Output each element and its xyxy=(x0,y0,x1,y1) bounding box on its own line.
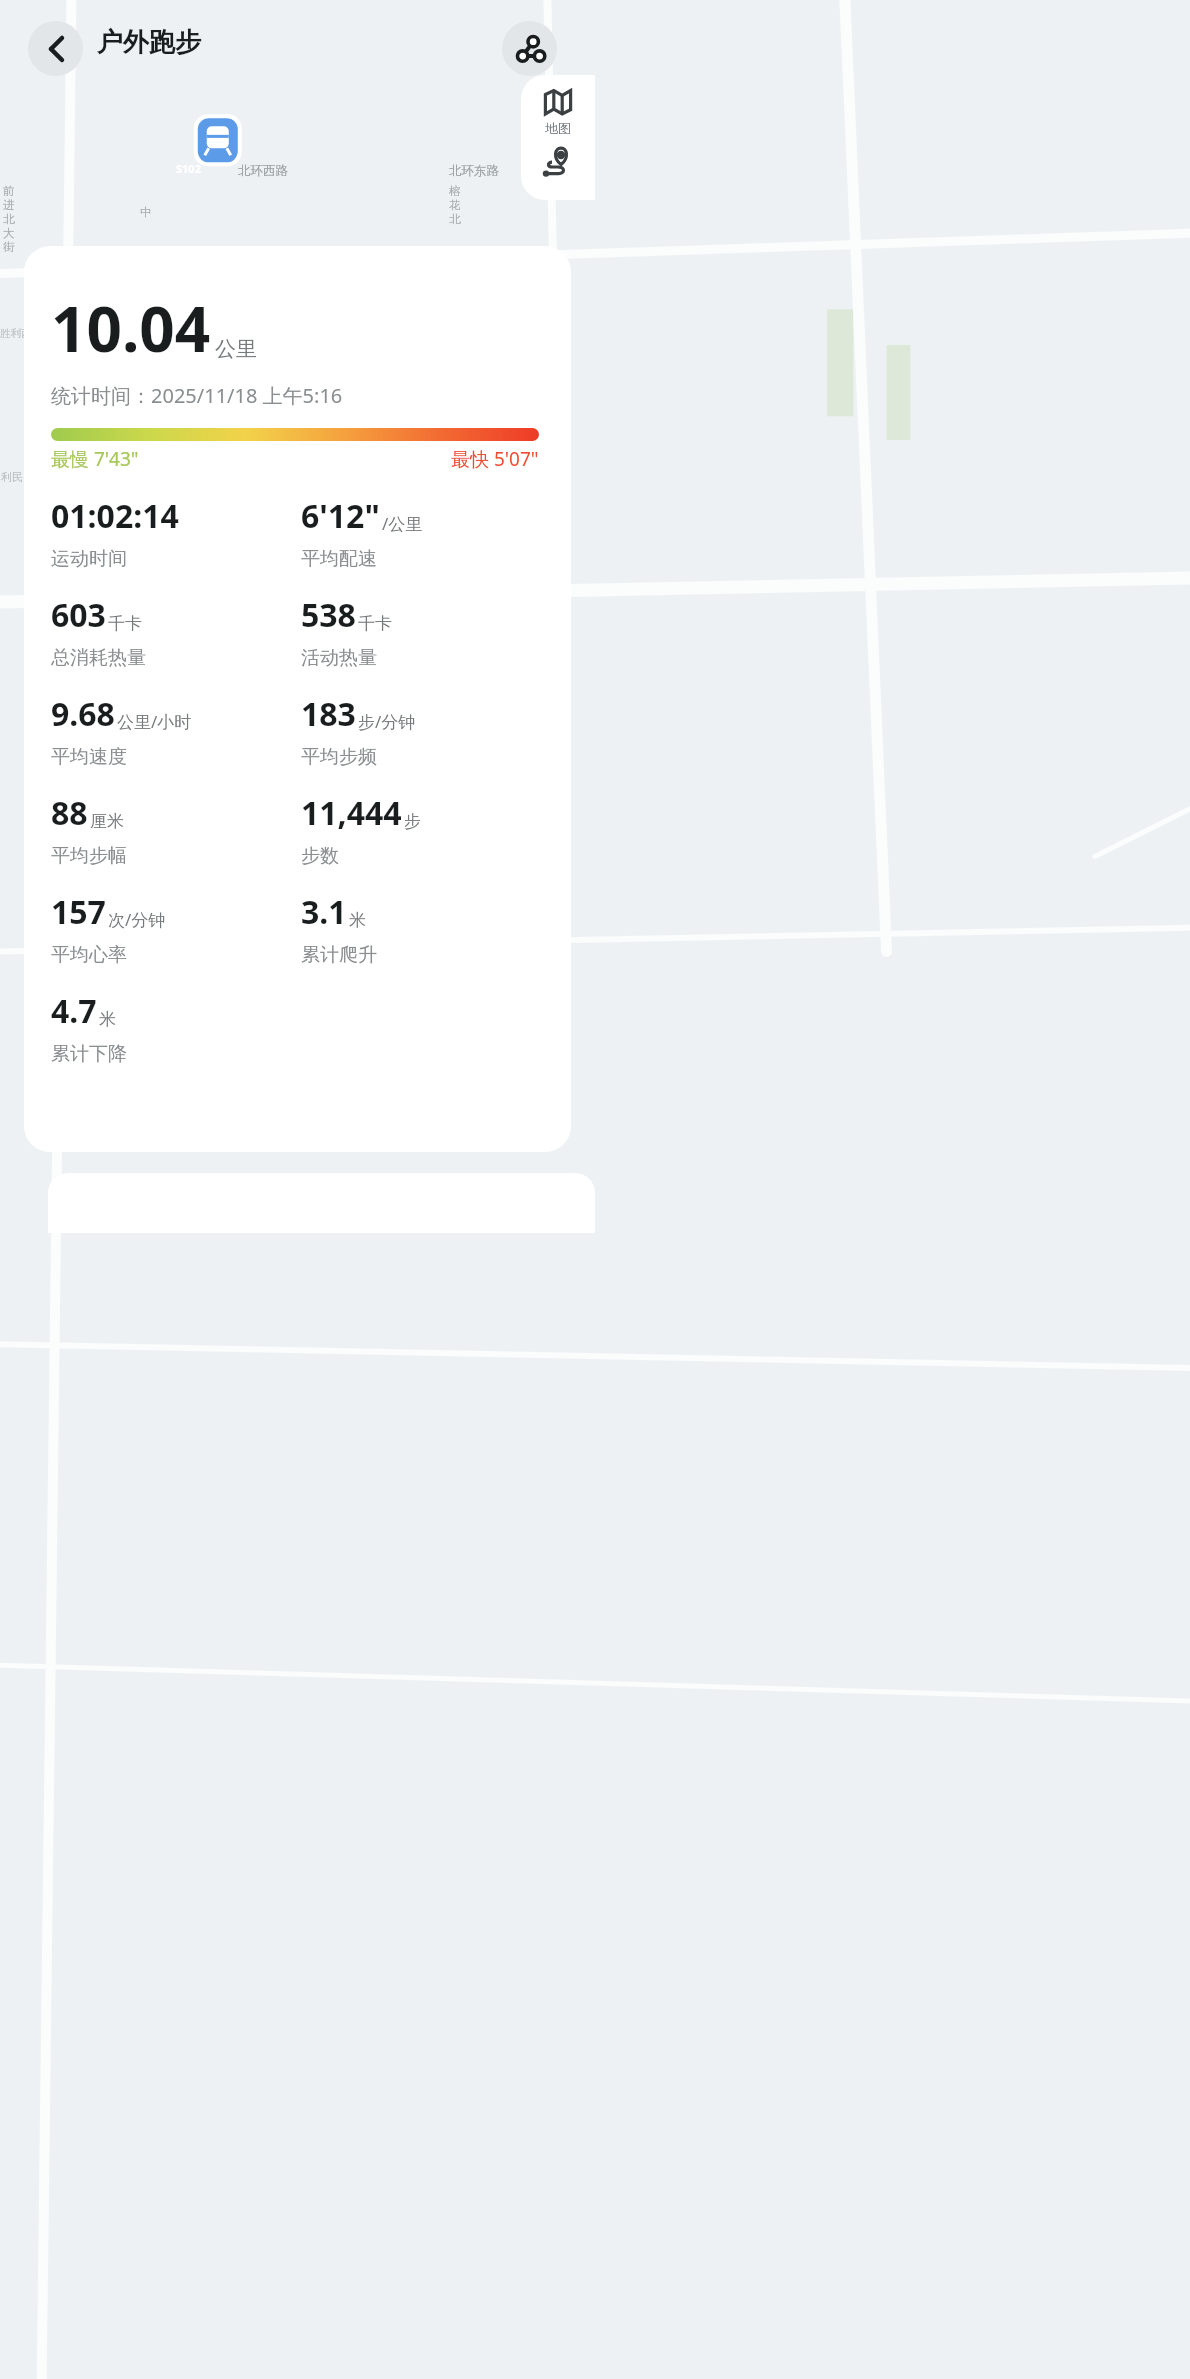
staticText: 平均步频 xyxy=(301,745,377,769)
button[interactable]: Map xyxy=(543,75,573,136)
button[interactable]: 6'12" xyxy=(301,494,551,571)
staticText: 9.68 xyxy=(51,692,115,736)
staticText: 平均速度 xyxy=(51,745,127,769)
staticText: 米 xyxy=(349,910,366,931)
staticText: 运动时间 xyxy=(51,547,127,571)
button[interactable]: 4.7 xyxy=(51,989,301,1066)
staticText: 最快 5'07" xyxy=(451,446,539,472)
staticText: 胜利西 xyxy=(0,327,32,340)
staticText: 累计下降 xyxy=(51,1042,127,1066)
staticText: 公里/小时 xyxy=(117,710,192,733)
button[interactable]: 538 xyxy=(301,593,551,670)
staticText: 01:02:14 xyxy=(51,494,179,538)
staticText: 平均配速 xyxy=(301,547,377,571)
staticText: 157 xyxy=(51,890,106,934)
button[interactable]: 88 xyxy=(51,791,301,868)
staticText: 地图 xyxy=(545,120,571,136)
button[interactable]: 11,444 xyxy=(301,791,551,868)
staticText: 最慢 7'43" xyxy=(51,446,139,472)
staticText: 米 xyxy=(99,1009,116,1030)
staticText: 4.7 xyxy=(51,989,97,1033)
staticText: 平均步幅 xyxy=(51,844,127,868)
button[interactable]: 603 xyxy=(51,593,301,670)
button[interactable]: 9.68 xyxy=(51,692,301,769)
staticText: 北 xyxy=(3,212,15,226)
staticText: 北 xyxy=(449,212,461,226)
staticText: 厘米 xyxy=(90,811,124,832)
staticText: 88 xyxy=(51,791,88,835)
staticText: 前 xyxy=(3,184,15,198)
staticText: 603 xyxy=(51,593,106,637)
staticText: 统计时间：2025/11/18 上午5:16 xyxy=(51,382,343,409)
staticText: 千卡 xyxy=(108,613,142,634)
staticText: 累计爬升 xyxy=(301,943,377,967)
staticText: 活动热量 xyxy=(301,646,377,670)
staticText: 步数 xyxy=(301,844,339,868)
staticText: 公里 xyxy=(215,336,257,362)
staticText: 街 xyxy=(3,240,15,254)
staticText: 花 xyxy=(449,198,461,212)
button[interactable]: Route xyxy=(543,146,573,176)
staticText: 榕 xyxy=(449,184,461,198)
staticText: 总消耗热量 xyxy=(51,646,146,670)
staticText: 进 xyxy=(3,198,15,212)
button[interactable]: 157 xyxy=(51,890,301,967)
button[interactable]: 01:02:14 xyxy=(51,494,301,571)
staticText: 中 xyxy=(140,205,152,219)
staticText: 平均心率 xyxy=(51,943,127,967)
button[interactable]: 3.1 xyxy=(301,890,551,967)
button[interactable]: 183 xyxy=(301,692,551,769)
staticText: 183 xyxy=(301,692,356,736)
staticText: 步 xyxy=(404,811,421,832)
staticText: S102 xyxy=(176,161,201,176)
staticText: 10.04 xyxy=(51,286,211,370)
staticText: 6'12" xyxy=(301,494,380,538)
button[interactable]: Share route xyxy=(502,21,557,76)
staticText: 利民 xyxy=(1,470,23,484)
staticText: 北环东路 xyxy=(449,163,499,179)
staticText: 3.1 xyxy=(301,890,347,934)
staticText: 户外跑步 xyxy=(97,26,201,59)
staticText: 538 xyxy=(301,593,356,637)
staticText: 北环西路 xyxy=(238,163,288,179)
staticText: 千卡 xyxy=(358,613,392,634)
button[interactable]: Back xyxy=(28,21,83,76)
staticText: 大 xyxy=(3,226,15,240)
staticText: /公里 xyxy=(382,512,423,535)
staticText: 次/分钟 xyxy=(108,908,166,931)
staticText: 11,444 xyxy=(301,791,402,835)
staticText: 步/分钟 xyxy=(358,710,416,733)
